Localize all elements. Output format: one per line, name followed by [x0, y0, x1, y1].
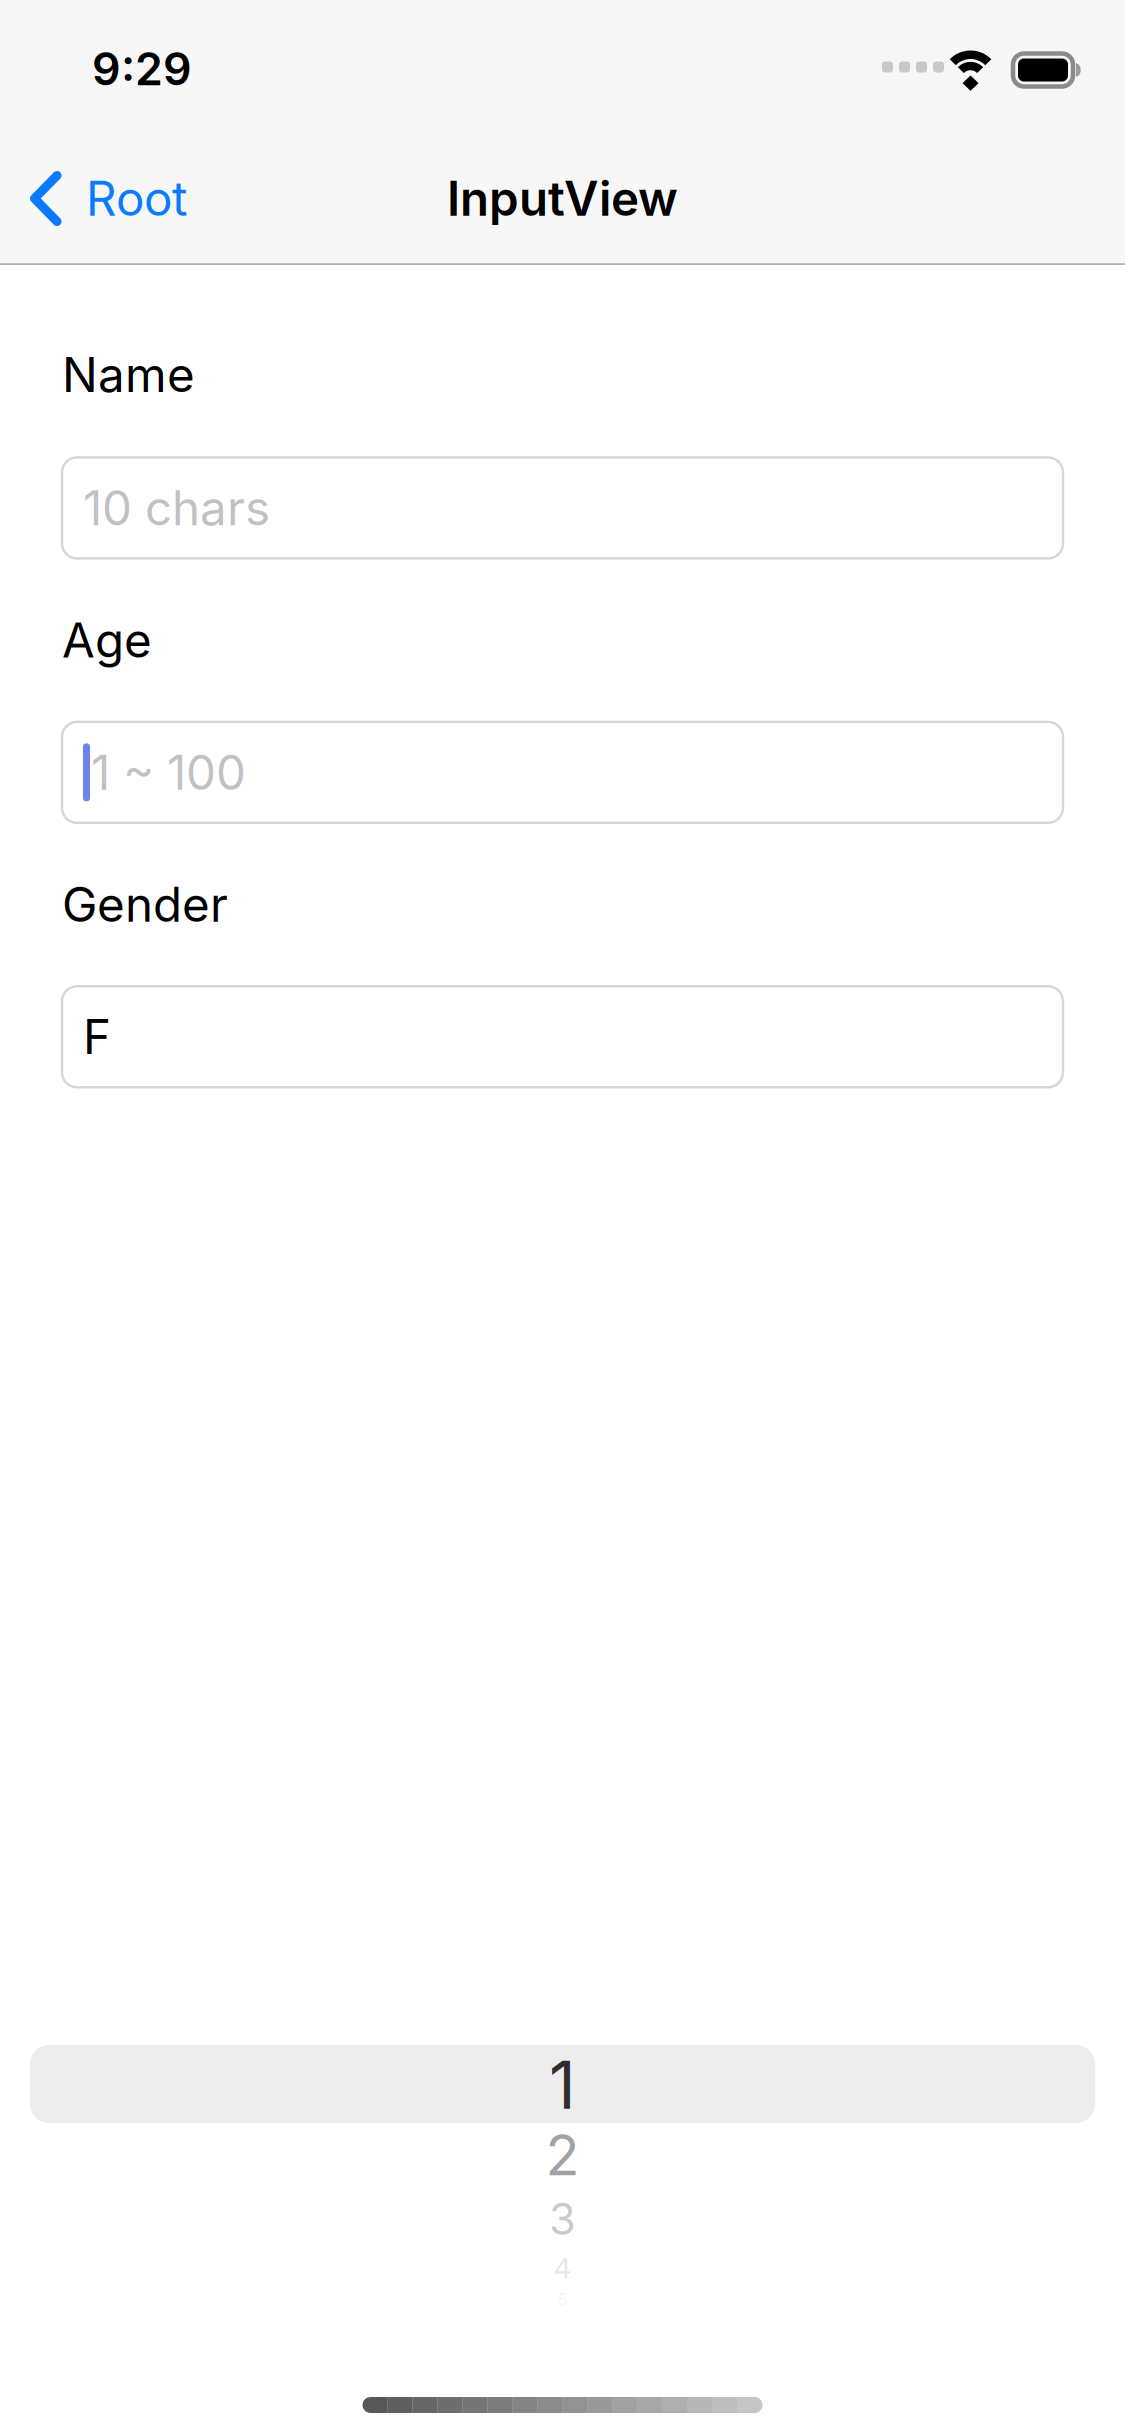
staticText: 3 — [549, 2193, 576, 2245]
staticText: 5 — [557, 2290, 567, 2310]
staticText: 4 — [553, 2251, 571, 2285]
button[interactable]: 10 chars — [62, 457, 1063, 558]
staticText: Root — [86, 170, 188, 227]
staticText: F — [83, 1008, 111, 1065]
staticText: 9:29 — [92, 42, 192, 96]
staticText: 10 chars — [83, 479, 270, 537]
staticText: 2 — [545, 2121, 579, 2189]
staticText: Gender — [62, 876, 228, 933]
staticText: InputView — [447, 170, 678, 227]
button[interactable]: Number picker — [30, 2045, 1095, 2330]
staticText: Name — [62, 346, 195, 403]
staticText: 1 — [549, 2045, 576, 2125]
staticText: 1 ~ 100 — [91, 744, 246, 801]
button[interactable]: Root — [0, 132, 212, 265]
button[interactable]: 1 ~ 100 — [62, 722, 1063, 823]
button[interactable]: F — [62, 986, 1063, 1087]
staticText: Age — [62, 611, 152, 669]
